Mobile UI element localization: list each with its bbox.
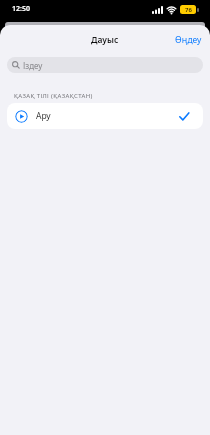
button[interactable]: Іздеу [7, 57, 203, 73]
button[interactable] [15, 110, 28, 123]
button[interactable]: Ару [7, 103, 203, 129]
button[interactable]: Өңдеу [167, 28, 210, 52]
staticText: Іздеу [23, 60, 43, 71]
staticText: Дауыс [91, 34, 119, 46]
staticText: Ару [36, 110, 51, 122]
staticText: Өңдеу [175, 34, 202, 46]
staticText: 12:50 [12, 4, 30, 14]
staticText: 76 [185, 6, 192, 14]
staticText: ҚАЗАҚ ТІЛІ (ҚАЗАҚСТАН) [14, 92, 93, 100]
